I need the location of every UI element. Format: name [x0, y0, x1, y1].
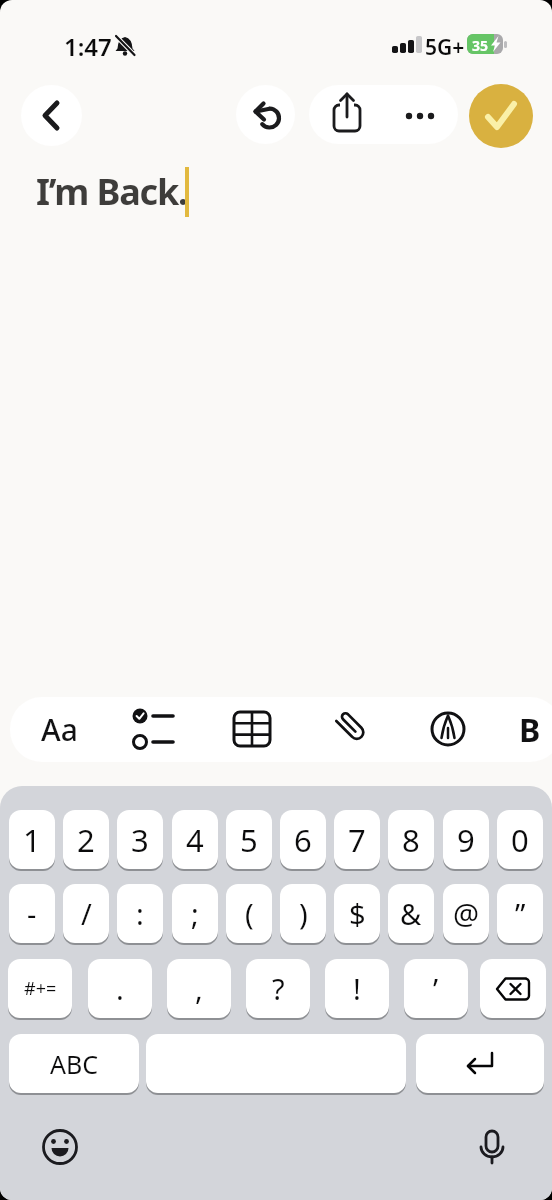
button[interactable]: @	[443, 884, 489, 943]
staticText: $	[349, 894, 366, 933]
staticText: ABC	[50, 1047, 99, 1081]
button[interactable]	[308, 697, 408, 762]
staticText: ;	[191, 894, 199, 933]
button[interactable]	[469, 84, 533, 148]
button[interactable]: #+=	[8, 959, 72, 1018]
button[interactable]	[108, 697, 208, 762]
button[interactable]	[38, 1125, 82, 1169]
staticText: -	[27, 894, 37, 933]
staticText: &	[400, 894, 422, 933]
staticText: 35	[472, 36, 489, 55]
button[interactable]	[408, 697, 498, 762]
staticText: 5G+	[425, 33, 465, 62]
staticText: /	[81, 894, 92, 933]
staticText: ?	[272, 969, 285, 1008]
staticText: 4	[186, 819, 204, 861]
button[interactable]: ’	[404, 959, 468, 1018]
button[interactable]: !	[325, 959, 389, 1018]
button[interactable]: B	[498, 697, 552, 762]
button[interactable]	[383, 85, 458, 144]
staticText: ,	[195, 969, 203, 1008]
button[interactable]	[21, 85, 82, 146]
staticText: .	[116, 969, 124, 1008]
button[interactable]	[146, 1034, 406, 1093]
button[interactable]: 1	[9, 810, 55, 869]
button[interactable]	[470, 1125, 514, 1169]
button[interactable]	[309, 85, 383, 144]
staticText: 5	[240, 819, 258, 861]
staticText: 8	[402, 819, 420, 861]
staticText: 6	[294, 819, 312, 861]
button[interactable]: ABC	[9, 1034, 139, 1093]
staticText: I’m Back.	[36, 167, 187, 216]
staticText: 7	[348, 819, 366, 861]
button[interactable]: -	[9, 884, 55, 943]
staticText: B	[519, 708, 541, 752]
staticText: (	[245, 894, 254, 933]
button[interactable]: (	[226, 884, 272, 943]
staticText: 2	[77, 819, 95, 861]
button[interactable]: &	[388, 884, 434, 943]
staticText: ’	[433, 969, 439, 1008]
button[interactable]: /	[63, 884, 109, 943]
button[interactable]: )	[280, 884, 326, 943]
button[interactable]: 8	[388, 810, 434, 869]
staticText: #+=	[24, 976, 57, 1001]
staticText: )	[299, 894, 308, 933]
staticText: 9	[457, 819, 475, 861]
button[interactable]	[208, 697, 308, 762]
button[interactable]	[480, 959, 546, 1018]
button[interactable]: ”	[497, 884, 543, 943]
button[interactable]	[236, 85, 295, 144]
button[interactable]	[416, 1034, 544, 1093]
button[interactable]: 6	[280, 810, 326, 869]
staticText: @	[453, 894, 480, 933]
staticText: ”	[515, 894, 526, 933]
button[interactable]: $	[334, 884, 380, 943]
button[interactable]: Aa	[10, 697, 108, 762]
staticText: !	[353, 969, 361, 1008]
staticText: 1	[23, 819, 41, 861]
button[interactable]: ?	[246, 959, 310, 1018]
staticText: Aa	[41, 709, 78, 750]
button[interactable]: 5	[226, 810, 272, 869]
staticText: 0	[511, 819, 529, 861]
button[interactable]: .	[88, 959, 152, 1018]
button[interactable]: :	[117, 884, 163, 943]
staticText: 1:47	[64, 30, 112, 63]
button[interactable]: ,	[167, 959, 231, 1018]
button[interactable]: 7	[334, 810, 380, 869]
button[interactable]: 2	[63, 810, 109, 869]
button[interactable]: 3	[117, 810, 163, 869]
staticText: :	[136, 894, 144, 933]
button[interactable]: 9	[443, 810, 489, 869]
button[interactable]: 0	[497, 810, 543, 869]
button[interactable]: ;	[172, 884, 218, 943]
staticText: 3	[131, 819, 149, 861]
button[interactable]: 4	[172, 810, 218, 869]
